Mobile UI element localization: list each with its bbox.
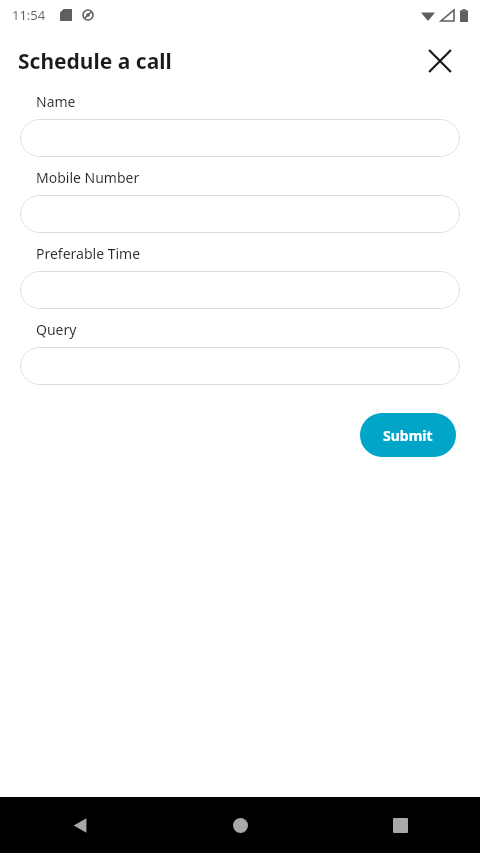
staticText: Submit bbox=[383, 426, 433, 445]
staticText: Schedule a call bbox=[18, 47, 172, 76]
button[interactable] bbox=[20, 271, 460, 309]
staticText: Name bbox=[36, 92, 76, 111]
staticText: Query bbox=[36, 320, 77, 339]
button[interactable]: Submit bbox=[360, 413, 456, 457]
button[interactable] bbox=[20, 347, 460, 385]
button[interactable] bbox=[20, 119, 460, 157]
button[interactable]: Home bbox=[160, 797, 320, 853]
button[interactable]: Recent apps bbox=[320, 797, 480, 853]
button[interactable] bbox=[20, 195, 460, 233]
button[interactable]: Close bbox=[420, 41, 460, 81]
button[interactable]: Back bbox=[0, 797, 160, 853]
staticText: Preferable Time bbox=[36, 244, 141, 263]
staticText: 11:54 bbox=[12, 6, 46, 24]
staticText: Mobile Number bbox=[36, 168, 140, 187]
